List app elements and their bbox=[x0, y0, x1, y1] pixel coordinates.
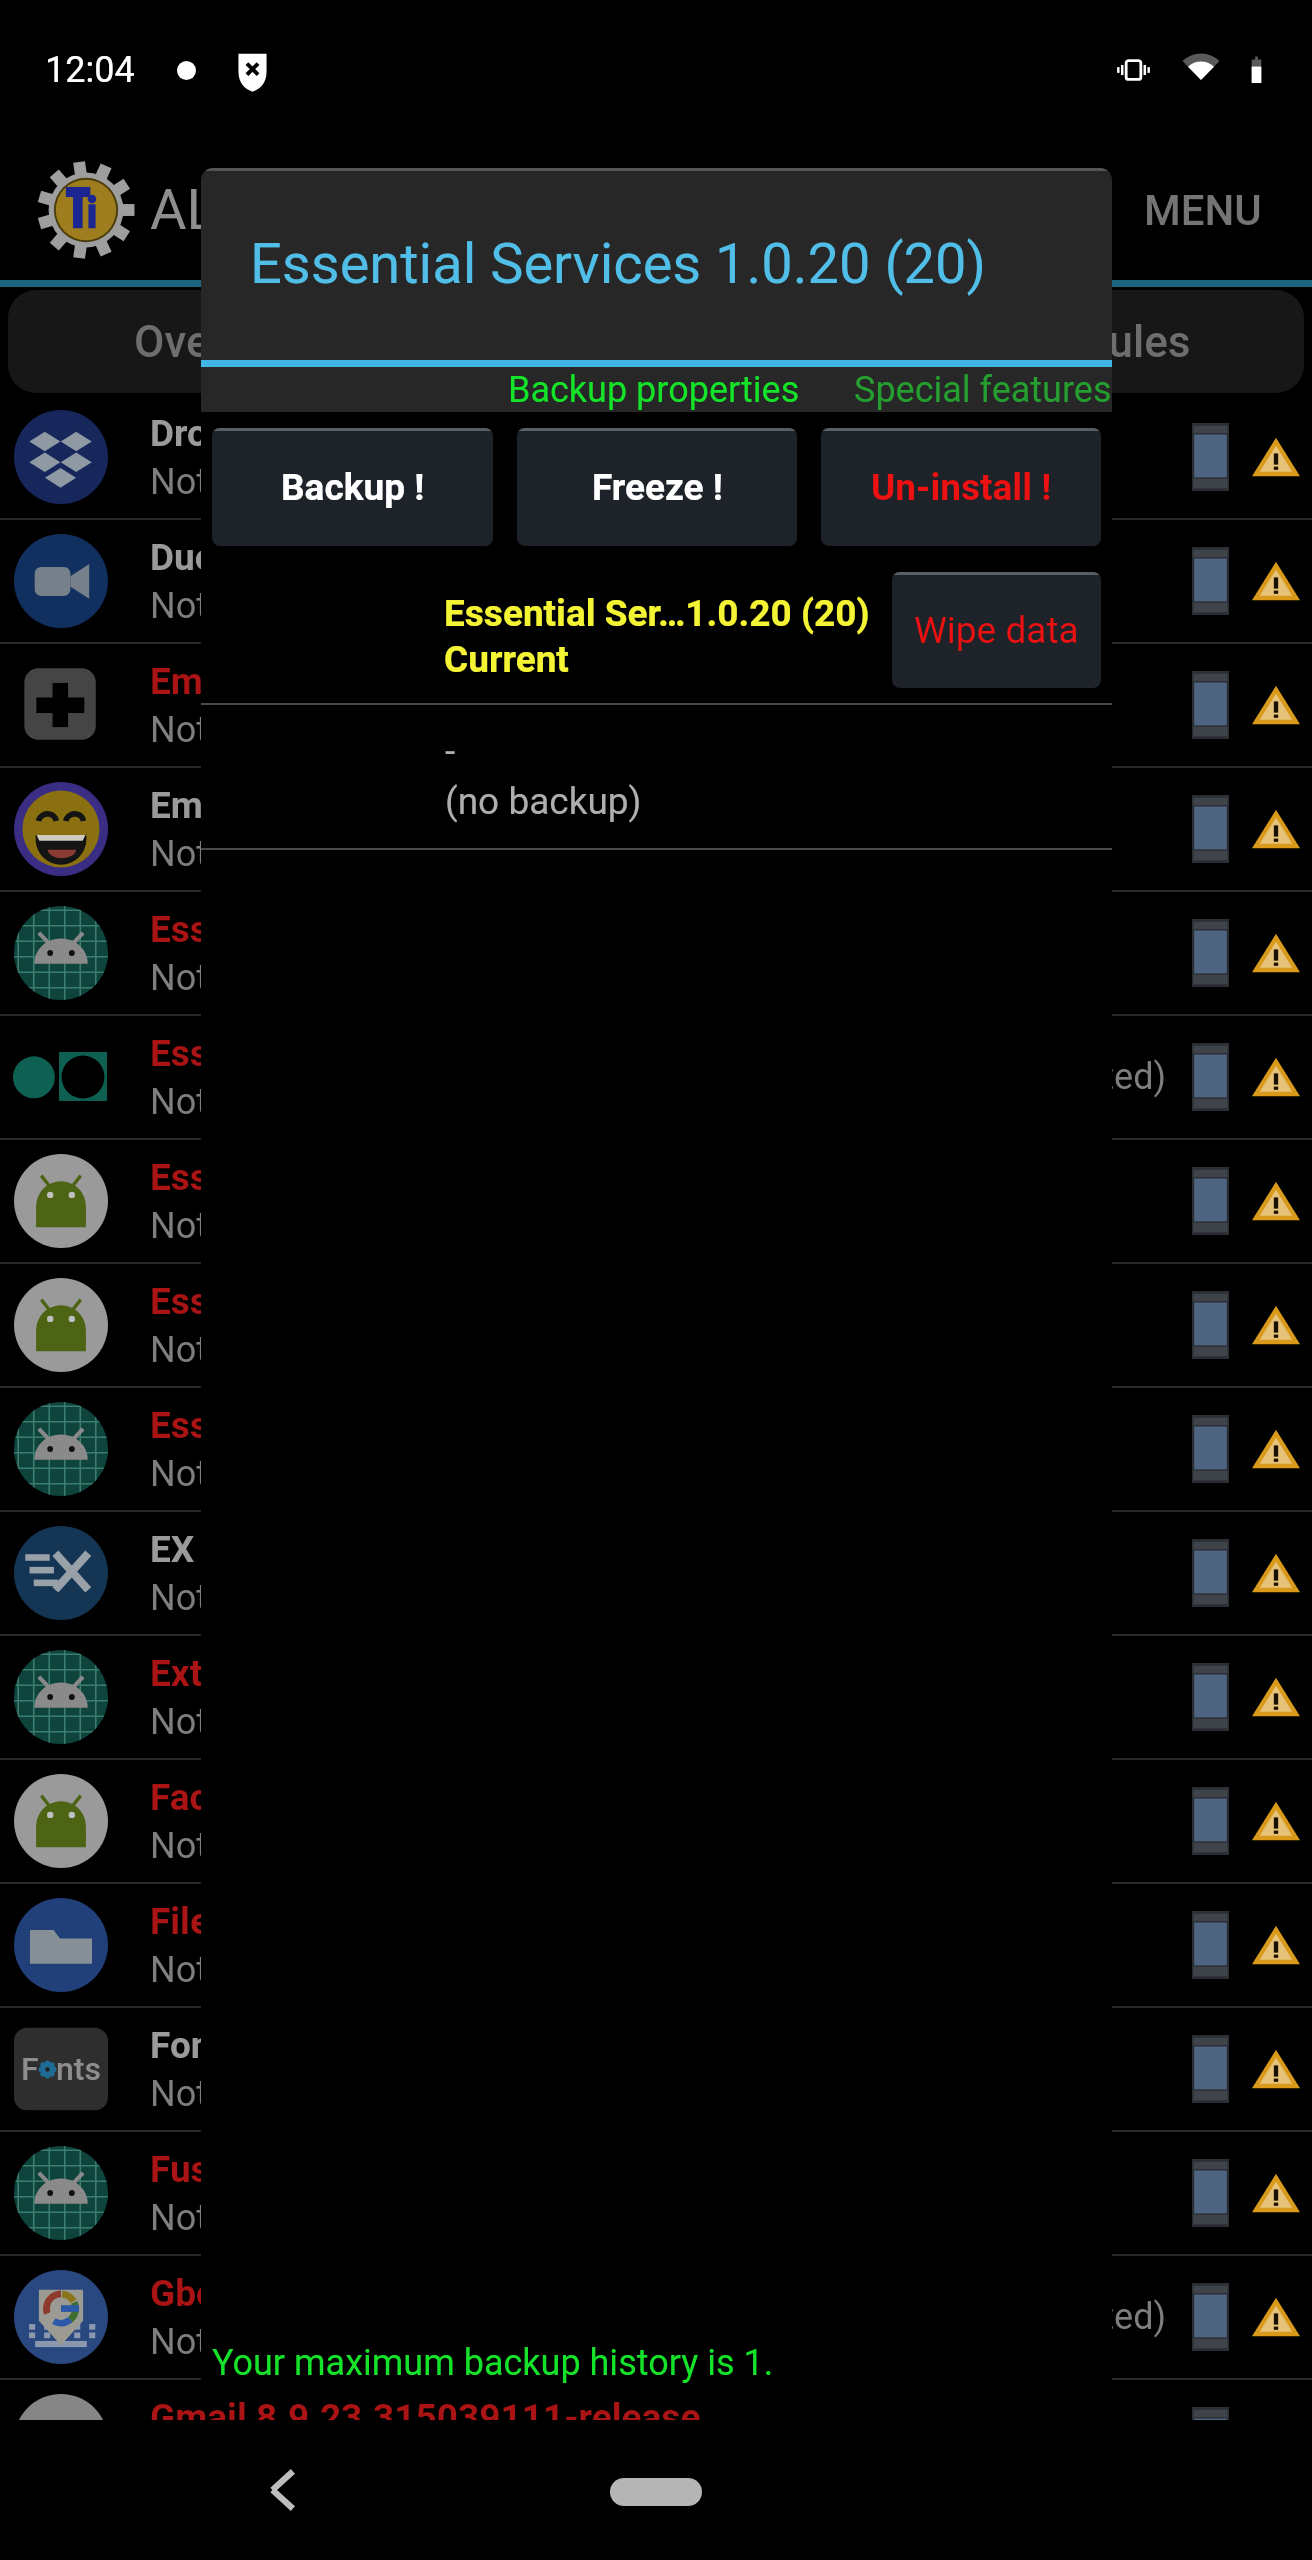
button[interactable]: Duo bbox=[0, 520, 1312, 642]
staticText: Not backed up bbox=[150, 2445, 382, 2487]
staticText: Not backed up bbox=[150, 1081, 382, 1123]
button[interactable]: Un-install ! bbox=[821, 428, 1101, 546]
button[interactable]: Schedules bbox=[872, 290, 1304, 393]
button[interactable]: Gmail 8.9.23.315039111-release bbox=[0, 2380, 1312, 2502]
staticText: MENU bbox=[1144, 186, 1262, 235]
staticText: Essentials bbox=[150, 1404, 321, 1447]
button[interactable]: Essential Tips bbox=[0, 1140, 1312, 1262]
button[interactable]: Essentials bbox=[0, 1388, 1312, 1510]
button[interactable]: Home bbox=[610, 2478, 702, 2506]
button[interactable]: Gboard bbox=[0, 2256, 1312, 2378]
staticText: Essential Services 1.0.20 (20) bbox=[250, 231, 987, 297]
staticText: Not backed up bbox=[150, 1329, 382, 1371]
staticText: Essential Space bbox=[150, 1032, 414, 1075]
staticText: Current bbox=[444, 638, 569, 681]
staticText: Fused Location bbox=[150, 2148, 404, 2191]
staticText: F bbox=[21, 2050, 39, 2088]
staticText: - bbox=[445, 730, 456, 773]
staticText: Essential Services bbox=[150, 908, 455, 951]
staticText: (no backup) bbox=[445, 780, 642, 823]
staticText: Not backed up bbox=[150, 2197, 382, 2239]
staticText: Backup/Restore bbox=[498, 316, 814, 368]
staticText: Not backed up bbox=[150, 709, 382, 751]
staticText: Files bbox=[150, 1900, 229, 1943]
staticText: (updated) bbox=[1010, 1056, 1166, 1098]
button[interactable]: Face Unlock bbox=[0, 1760, 1312, 1882]
staticText: Backup ! bbox=[281, 466, 425, 509]
staticText: Not backed up bbox=[150, 2073, 382, 2115]
staticText: ALL bbox=[150, 177, 247, 243]
staticText: Wipe data bbox=[914, 609, 1079, 652]
button[interactable]: MENU bbox=[1134, 176, 1272, 245]
staticText: Not backed up bbox=[150, 585, 382, 627]
staticText: Not backed up bbox=[150, 1949, 382, 1991]
staticText: nts bbox=[56, 2050, 101, 2088]
staticText: Schedules bbox=[986, 316, 1191, 368]
button[interactable]: Wipe data bbox=[892, 572, 1101, 688]
button[interactable]: Essential Services bbox=[0, 892, 1312, 1014]
staticText: Emoji bbox=[150, 784, 244, 827]
staticText: Duo bbox=[150, 536, 216, 579]
staticText: Not backed up bbox=[150, 1205, 382, 1247]
button[interactable]: EX Kernel Manager bbox=[0, 1512, 1312, 1634]
button[interactable]: Emergency information bbox=[0, 644, 1312, 766]
staticText: (updated) bbox=[1010, 2296, 1166, 2338]
staticText: Gboard bbox=[150, 2272, 271, 2315]
staticText: Not backed up bbox=[150, 461, 382, 503]
staticText: Not backed up bbox=[150, 1453, 382, 1495]
staticText: Overview bbox=[134, 316, 315, 368]
staticText: Essential Ser…1.0.20 (20) bbox=[444, 592, 870, 635]
staticText: Dropbox bbox=[150, 412, 289, 455]
staticText: Essential Updater bbox=[150, 1280, 443, 1323]
button[interactable]: Backup ! bbox=[212, 428, 493, 546]
staticText: Not backed up bbox=[150, 957, 382, 999]
button[interactable]: Backup/Restore bbox=[440, 290, 872, 393]
button[interactable]: Essential Updater bbox=[0, 1264, 1312, 1386]
button[interactable]: Fused Location bbox=[0, 2132, 1312, 2254]
button[interactable]: Overview bbox=[8, 290, 440, 393]
staticText: 12:04 bbox=[45, 49, 135, 91]
staticText: Not backed up bbox=[150, 2321, 382, 2363]
button[interactable]: F bbox=[0, 2008, 1312, 2130]
staticText: Not backed up bbox=[150, 1825, 382, 1867]
staticText: Not backed up bbox=[150, 1577, 382, 1619]
staticText: Emergency information bbox=[150, 660, 540, 703]
staticText: Backup properties bbox=[508, 369, 800, 411]
staticText: Essential Tips bbox=[150, 1156, 383, 1199]
staticText: Fonts bbox=[150, 2024, 244, 2067]
button[interactable]: Special features bbox=[854, 369, 1112, 411]
staticText: Not backed up bbox=[150, 833, 382, 875]
staticText: Un-install ! bbox=[871, 466, 1052, 509]
staticText: Special features bbox=[854, 369, 1112, 411]
staticText: Your maximum backup history is 1. bbox=[212, 2342, 774, 2384]
button[interactable]: Files bbox=[0, 1884, 1312, 2006]
button[interactable]: Backup properties bbox=[508, 369, 800, 411]
staticText: Freeze ! bbox=[592, 466, 723, 509]
button[interactable]: Extras bbox=[0, 1636, 1312, 1758]
staticText: Face Unlock bbox=[150, 1776, 353, 1819]
button[interactable]: Essential Space bbox=[0, 1016, 1312, 1138]
button[interactable]: Emoji bbox=[0, 768, 1312, 890]
staticText: Not backed up bbox=[150, 1701, 382, 1743]
button[interactable]: Freeze ! bbox=[517, 428, 797, 546]
button[interactable]: Back bbox=[252, 2459, 314, 2521]
staticText: Gmail 8.9.23.315039111-release bbox=[150, 2396, 701, 2439]
button[interactable]: Dropbox bbox=[0, 396, 1312, 518]
staticText: Extras bbox=[150, 1652, 255, 1695]
staticText: EX Kernel Manager bbox=[150, 1528, 468, 1571]
